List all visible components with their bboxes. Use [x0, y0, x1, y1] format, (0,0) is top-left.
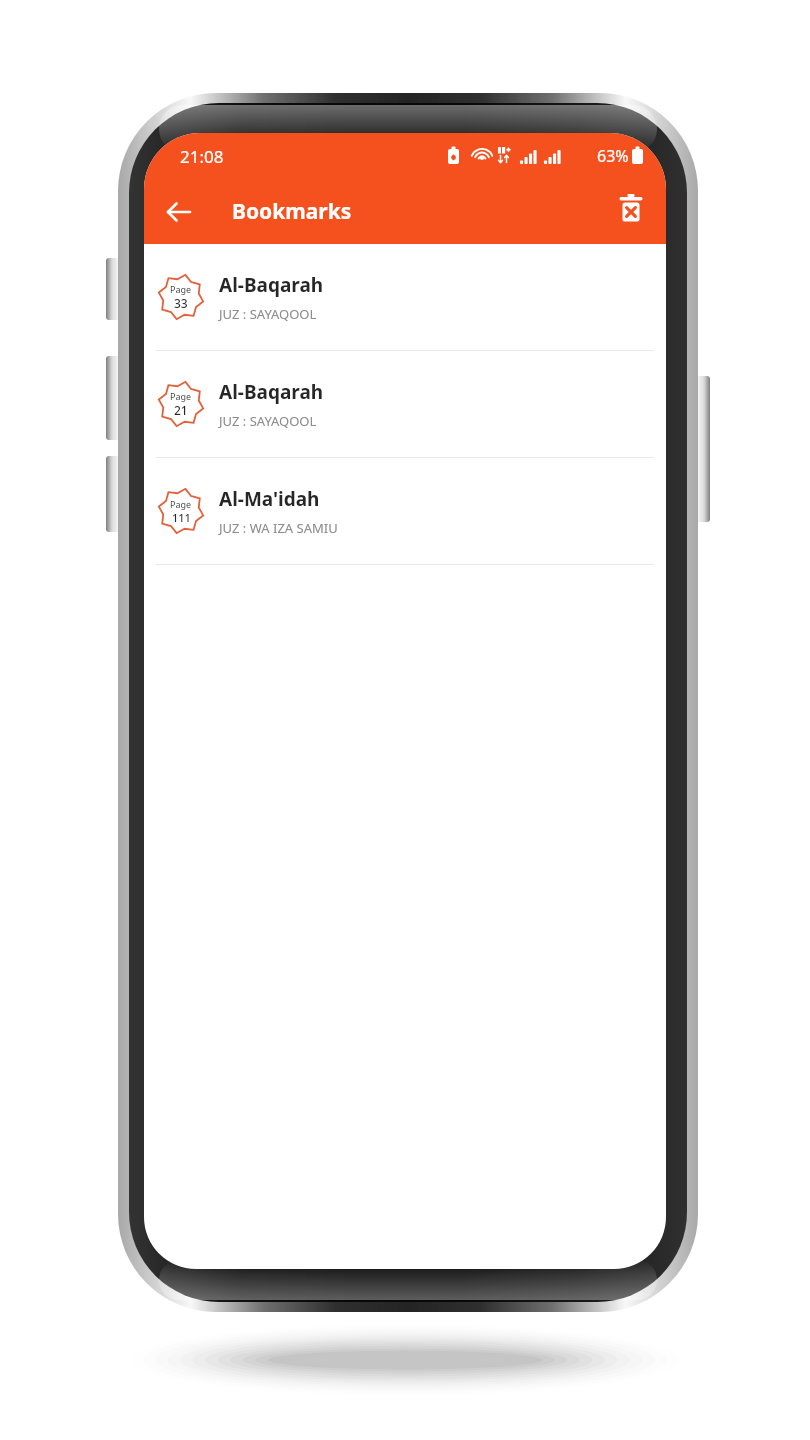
staticText: 111: [172, 510, 191, 525]
staticText: JUZ : SAYAQOOL: [219, 412, 317, 430]
button[interactable]: Page: [144, 458, 666, 564]
button[interactable]: Delete all bookmarks: [606, 187, 656, 237]
button[interactable]: Page: [144, 244, 666, 350]
staticText: JUZ : WA IZA SAMIU: [219, 519, 338, 537]
button[interactable]: Back: [154, 187, 204, 237]
staticText: 21: [174, 402, 188, 418]
button[interactable]: Page: [144, 351, 666, 457]
staticText: Al-Ma'idah: [219, 486, 320, 512]
staticText: 33: [174, 295, 188, 311]
staticText: Page: [170, 390, 192, 402]
staticText: JUZ : SAYAQOOL: [219, 305, 317, 323]
staticText: Bookmarks: [232, 197, 352, 226]
staticText: Page: [170, 283, 192, 295]
staticText: Page: [170, 498, 192, 510]
staticText: 21:08: [180, 145, 224, 168]
staticText: Al-Baqarah: [219, 379, 324, 405]
staticText: Al-Baqarah: [219, 272, 324, 298]
staticText: 63%: [597, 145, 629, 167]
